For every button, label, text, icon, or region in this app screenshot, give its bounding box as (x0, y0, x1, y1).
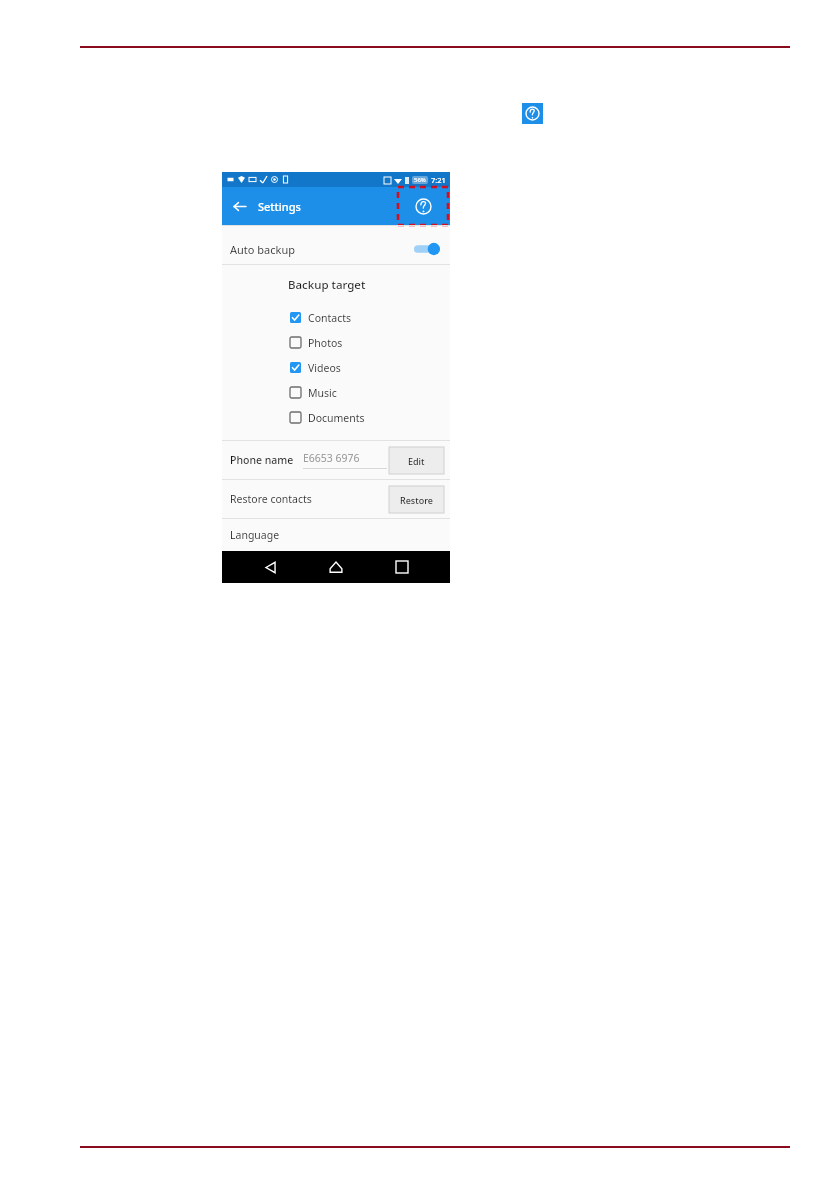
button[interactable]: Edit (389, 447, 444, 474)
button[interactable]: Restore (389, 486, 444, 513)
button[interactable]: Help (522, 103, 543, 124)
staticText: Documents (308, 411, 365, 425)
staticText: Phone name (230, 453, 294, 467)
staticText: Videos (308, 361, 341, 375)
staticText: Settings (258, 199, 301, 214)
button[interactable]: Photos (222, 330, 450, 355)
button[interactable]: Recent apps (384, 551, 420, 583)
button[interactable]: Auto backup (222, 234, 450, 264)
staticText: Language (230, 528, 280, 542)
button[interactable]: Videos (222, 355, 450, 380)
staticText: Photos (308, 336, 343, 350)
button[interactable]: Help (411, 194, 435, 218)
staticText: Contacts (308, 311, 352, 325)
button[interactable]: Back (229, 196, 249, 216)
button[interactable]: Music (222, 380, 450, 405)
staticText: Restore contacts (230, 492, 312, 506)
staticText: Edit (408, 455, 425, 467)
staticText: Backup target (288, 277, 366, 293)
button[interactable]: Home (318, 551, 354, 583)
staticText: 7:21 (431, 175, 446, 185)
staticText: Restore (400, 494, 433, 506)
staticText: 56% (414, 176, 426, 184)
button[interactable]: Documents (222, 405, 450, 430)
button[interactable]: Contacts (222, 305, 450, 330)
staticText: Auto backup (230, 242, 295, 257)
button[interactable]: Back (252, 551, 288, 583)
staticText: Music (308, 386, 337, 400)
staticText: E6653 6976 (303, 451, 360, 465)
